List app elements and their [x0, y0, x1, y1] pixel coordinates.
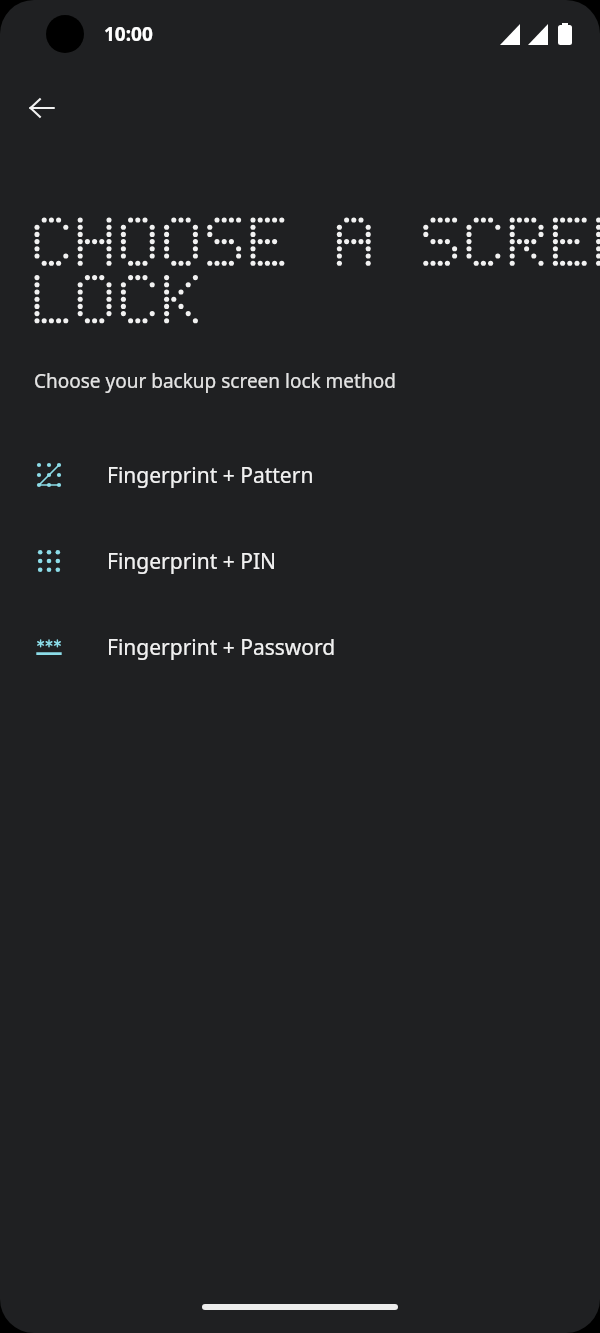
staticText: Fingerprint + Pattern	[107, 461, 314, 490]
button[interactable]: Fingerprint + PIN	[0, 518, 600, 604]
button[interactable]: Fingerprint + Pattern	[0, 432, 600, 518]
button[interactable]: Fingerprint + Password	[0, 604, 600, 690]
staticText: 10:00	[104, 21, 153, 47]
staticText: Fingerprint + Password	[107, 633, 336, 662]
staticText: Fingerprint + PIN	[107, 547, 277, 576]
button[interactable]: Back	[18, 84, 66, 132]
staticText: Choose your backup screen lock method	[34, 368, 396, 394]
